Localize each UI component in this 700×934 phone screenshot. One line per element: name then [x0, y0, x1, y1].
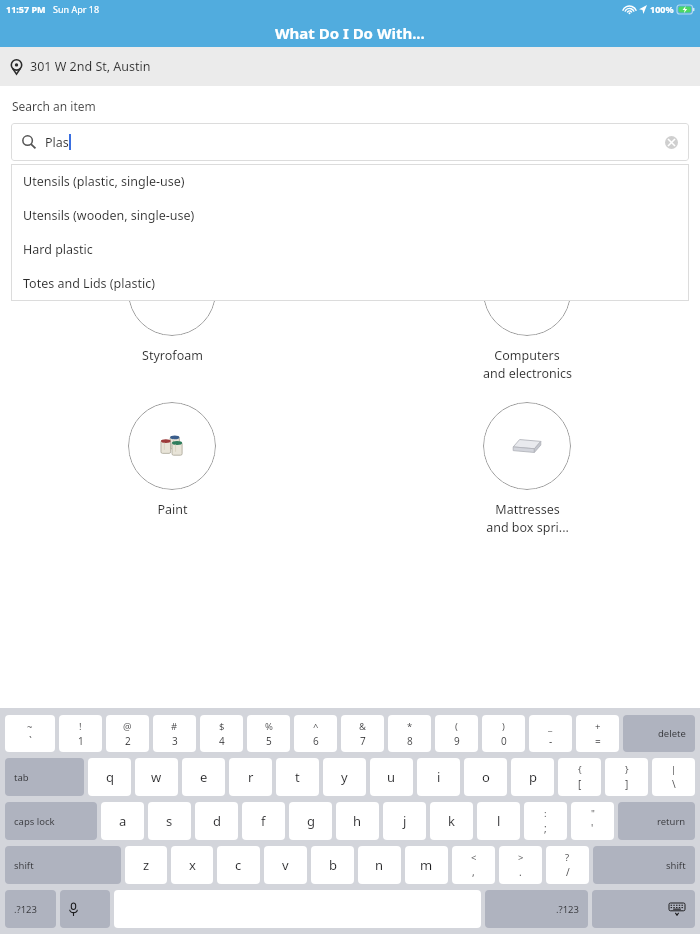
staticText: n: [375, 856, 384, 874]
button[interactable]: &: [341, 715, 384, 752]
button[interactable]: j: [383, 802, 426, 840]
button[interactable]: @: [106, 715, 149, 752]
button[interactable]: q: [88, 758, 131, 796]
button[interactable]: <: [452, 846, 495, 884]
button[interactable]: m: [405, 846, 448, 884]
staticText: }: [625, 763, 629, 776]
button[interactable]: ": [571, 802, 614, 840]
button[interactable]: o: [464, 758, 507, 796]
button[interactable]: Computers: [457, 248, 597, 382]
button[interactable]: Utensils (wooden, single-use): [11, 198, 689, 232]
button[interactable]: w: [135, 758, 178, 796]
staticText: u: [387, 768, 396, 786]
staticText: d: [213, 812, 221, 830]
staticText: 7: [360, 734, 366, 748]
staticText: caps lock: [14, 815, 55, 828]
button[interactable]: k: [430, 802, 473, 840]
button[interactable]: delete: [623, 715, 695, 752]
button[interactable]: }: [605, 758, 648, 796]
button[interactable]: ): [482, 715, 525, 752]
staticText: @: [123, 720, 132, 733]
staticText: Totes and Lids (plastic): [23, 275, 155, 292]
staticText: 100%: [650, 3, 674, 15]
button[interactable]: :: [524, 802, 567, 840]
button[interactable]: ^: [294, 715, 337, 752]
button[interactable]: Utensils (plastic, single-use): [11, 164, 689, 198]
button[interactable]: n: [358, 846, 401, 884]
button[interactable]: Paint: [102, 402, 242, 518]
button[interactable]: Plas: [11, 123, 689, 161]
button[interactable]: x: [171, 846, 213, 884]
button[interactable]: g: [289, 802, 332, 840]
staticText: Utensils (plastic, single-use): [23, 173, 185, 190]
staticText: a: [119, 812, 127, 830]
staticText: and electronics: [483, 365, 572, 382]
button[interactable]: u: [370, 758, 413, 796]
button[interactable]: shift: [5, 846, 121, 884]
button[interactable]: ?: [546, 846, 589, 884]
staticText: delete: [658, 727, 686, 740]
staticText: [: [578, 777, 582, 791]
button[interactable]: p: [511, 758, 554, 796]
button[interactable]: +: [576, 715, 619, 752]
staticText: 5: [266, 734, 272, 748]
button[interactable]: z: [125, 846, 167, 884]
button[interactable]: Styrofoam: [102, 248, 242, 364]
button[interactable]: |: [652, 758, 695, 796]
staticText: 4: [219, 734, 225, 748]
button[interactable]: .?123: [485, 890, 588, 928]
button[interactable]: Mattresses: [457, 402, 597, 536]
button[interactable]: *: [388, 715, 431, 752]
button[interactable]: s: [148, 802, 191, 840]
button[interactable]: %: [247, 715, 290, 752]
button[interactable]: _: [529, 715, 572, 752]
button[interactable]: shift: [593, 846, 695, 884]
button[interactable]: t: [276, 758, 319, 796]
button[interactable]: i: [417, 758, 460, 796]
button[interactable]: ~: [5, 715, 55, 752]
staticText: Sun Apr 18: [53, 3, 100, 15]
button[interactable]: r: [229, 758, 272, 796]
button[interactable]: d: [195, 802, 238, 840]
button[interactable]: #: [153, 715, 196, 752]
staticText: 1: [78, 734, 84, 748]
button[interactable]: Hide keyboard: [592, 890, 695, 928]
button[interactable]: v: [264, 846, 307, 884]
staticText: Utensils (wooden, single-use): [23, 207, 195, 224]
button[interactable]: c: [217, 846, 260, 884]
button[interactable]: b: [311, 846, 354, 884]
button[interactable]: {: [558, 758, 601, 796]
button[interactable]: f: [242, 802, 285, 840]
button[interactable]: e: [182, 758, 225, 796]
button[interactable]: l: [477, 802, 520, 840]
staticText: -: [549, 734, 553, 748]
staticText: Mattresses: [495, 501, 560, 518]
button[interactable]: (: [435, 715, 478, 752]
button[interactable]: !: [59, 715, 102, 752]
staticText: ~: [27, 720, 33, 733]
staticText: &: [359, 720, 366, 733]
button[interactable]: 301 W 2nd St, Austin: [0, 47, 700, 86]
button[interactable]: Clear search: [665, 136, 678, 149]
button[interactable]: return: [618, 802, 695, 840]
button[interactable]: h: [336, 802, 379, 840]
button[interactable]: $: [200, 715, 243, 752]
button[interactable]: Totes and Lids (plastic): [11, 266, 689, 300]
button[interactable]: Dictation: [60, 890, 110, 928]
staticText: 6: [313, 734, 319, 748]
button[interactable]: a: [101, 802, 144, 840]
button[interactable]: .?123: [5, 890, 56, 928]
button[interactable]: caps lock: [5, 802, 97, 840]
staticText: 0: [501, 734, 507, 748]
staticText: tab: [14, 771, 29, 784]
staticText: ": [591, 807, 595, 820]
staticText: x: [189, 856, 196, 874]
button[interactable]: tab: [5, 758, 84, 796]
staticText: l: [497, 812, 501, 830]
button[interactable]: >: [499, 846, 542, 884]
staticText: <: [471, 851, 477, 864]
button[interactable]: y: [323, 758, 366, 796]
button[interactable]: Hard plastic: [11, 232, 689, 266]
staticText: =: [595, 734, 601, 748]
